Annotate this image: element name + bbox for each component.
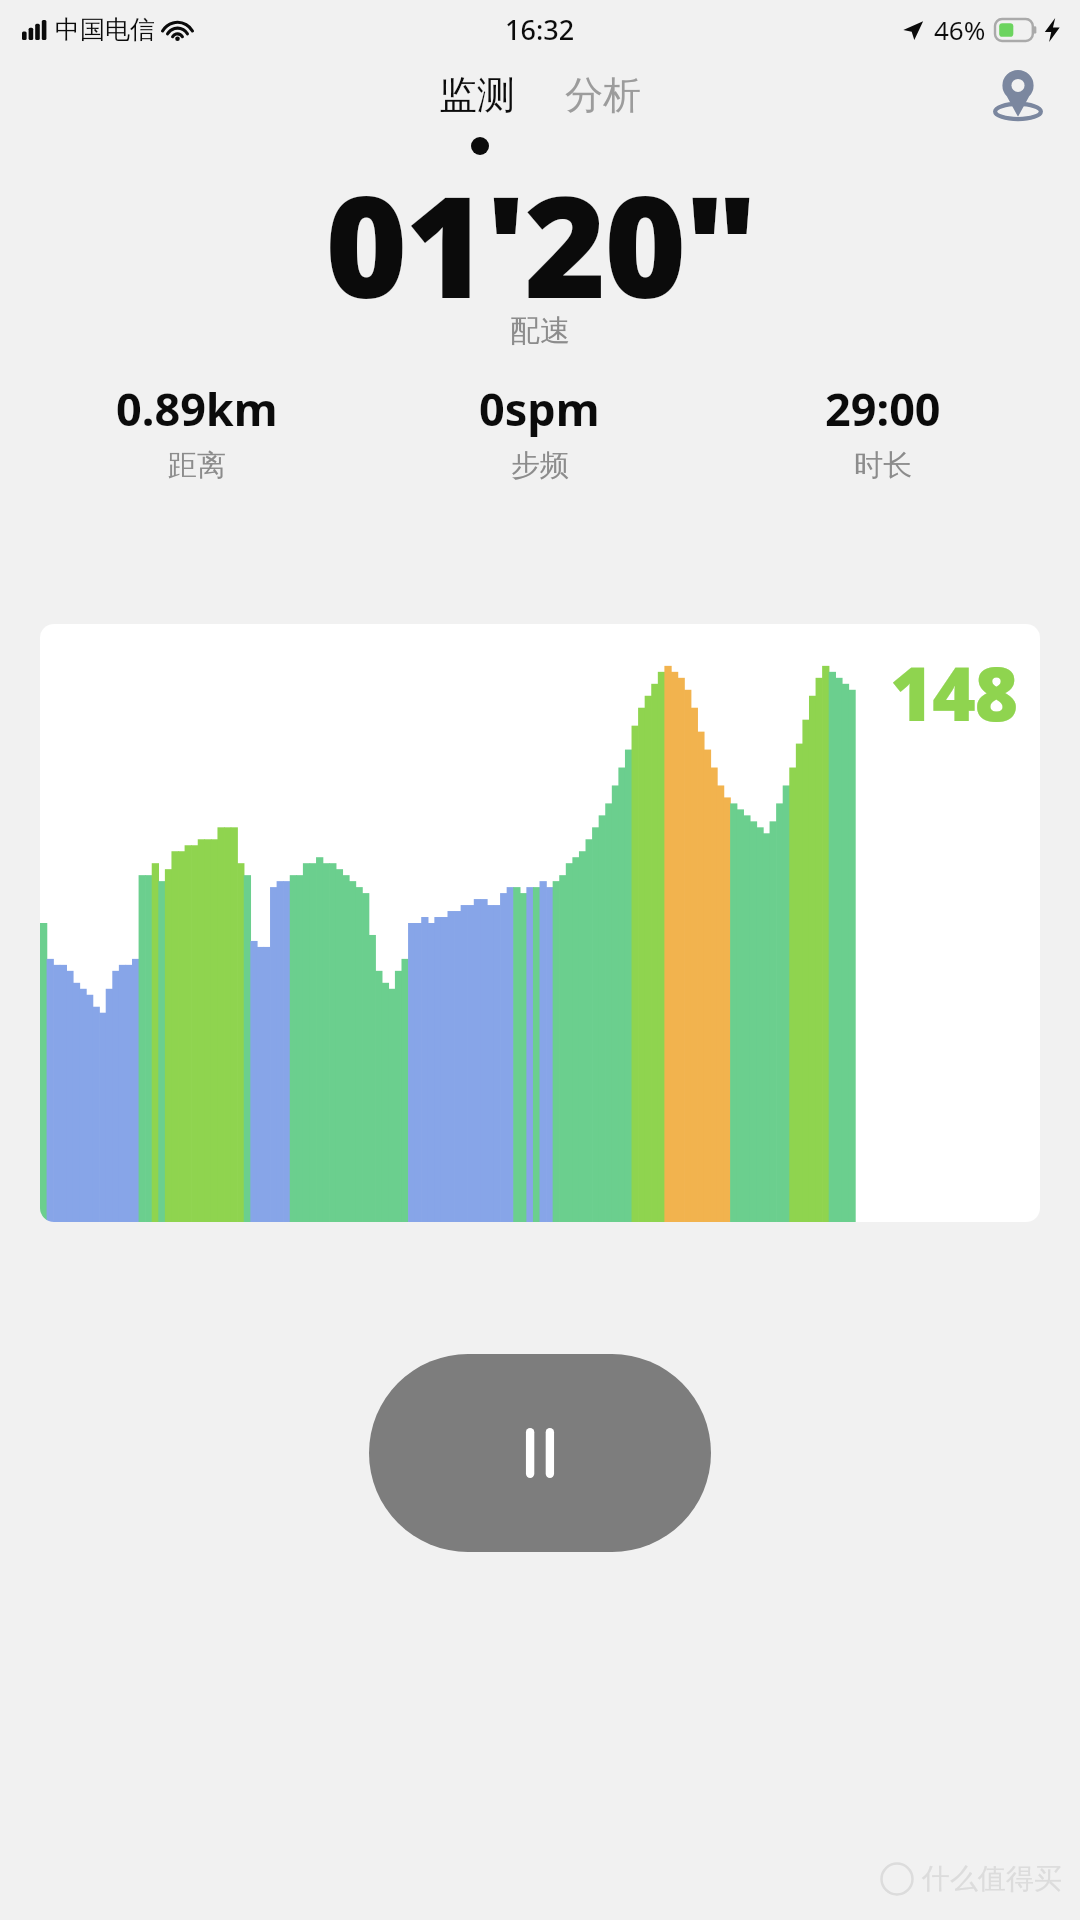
staticText: 步频 [511, 447, 569, 484]
staticText: 中国电信 [55, 14, 155, 45]
button[interactable]: Pause [369, 1354, 711, 1552]
button[interactable]: Map location [982, 59, 1054, 131]
button[interactable]: 0spm [368, 378, 711, 484]
staticText: 配速 [510, 312, 570, 350]
button[interactable]: 监测 [429, 65, 525, 125]
staticText: 0spm [479, 378, 600, 439]
staticText: 148 [890, 642, 1018, 743]
staticText: 46% [934, 12, 986, 47]
button[interactable]: 0.89km [26, 378, 368, 484]
staticText: 0.89km [116, 378, 278, 439]
staticText: 什么值得买 [922, 1861, 1062, 1896]
staticText: 距离 [168, 447, 226, 484]
staticText: 分析 [565, 71, 641, 119]
staticText: 01'20" [325, 148, 756, 308]
button[interactable]: 分析 [555, 65, 651, 125]
staticText: 监测 [439, 71, 515, 119]
staticText: 29:00 [825, 378, 941, 439]
staticText: 时长 [854, 447, 912, 484]
staticText: 16:32 [505, 11, 575, 48]
button[interactable]: 29:00 [711, 378, 1054, 484]
button[interactable]: 148 [40, 624, 1040, 1222]
